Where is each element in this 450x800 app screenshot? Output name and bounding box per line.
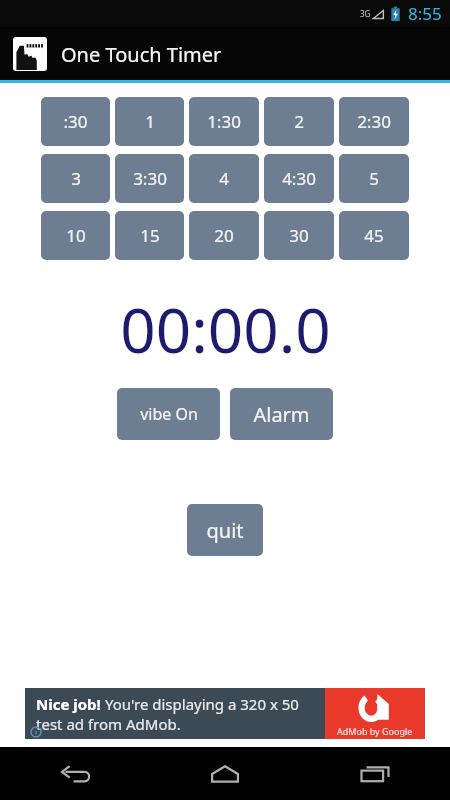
staticText: 4:30 [282,167,316,190]
staticText: You're displaying a 320 x 50 [105,694,299,714]
staticText: 3G [360,8,371,19]
staticText: One Touch Timer [61,41,222,68]
staticText: 3:30 [133,167,167,190]
button[interactable]: AdMob test advertisement [25,688,425,739]
button[interactable]: 2:30 [339,97,409,146]
button[interactable]: 2 [264,97,334,146]
staticText: AdMob by Google [337,725,413,737]
staticText: Nice job! [36,694,105,714]
staticText: 3 [71,167,81,190]
staticText: 15 [140,224,160,247]
button[interactable]: Recent apps [300,747,450,800]
button[interactable]: Home [150,747,300,800]
staticText: 1 [145,110,155,133]
staticText: vibe On [140,403,198,425]
staticText: 1:30 [207,110,241,133]
staticText: 30 [289,224,309,247]
staticText: test ad from AdMob. [36,714,181,734]
button[interactable]: :30 [41,97,110,146]
button[interactable]: 5 [339,154,409,203]
staticText: 2:30 [357,110,391,133]
staticText: 00:00.0 [120,287,331,371]
staticText: Alarm [253,401,310,428]
button[interactable]: 15 [115,211,184,260]
button[interactable]: Alarm [230,388,333,440]
staticText: :30 [63,110,88,133]
button[interactable]: quit [187,504,263,556]
button[interactable]: 1 [115,97,184,146]
staticText: 2 [294,110,304,133]
button[interactable]: 3 [41,154,110,203]
staticText: quit [206,517,244,544]
button[interactable]: 4 [189,154,259,203]
staticText: 5 [369,167,379,190]
staticText: 20 [214,224,234,247]
staticText: 4 [219,167,229,190]
button[interactable]: 30 [264,211,334,260]
button[interactable]: Back [0,747,150,800]
button[interactable]: 45 [339,211,409,260]
button[interactable]: vibe On [117,388,220,440]
button[interactable]: 4:30 [264,154,334,203]
button[interactable]: 20 [189,211,259,260]
button[interactable]: 3:30 [115,154,184,203]
staticText: 8:55 [408,2,442,25]
button[interactable]: 1:30 [189,97,259,146]
button[interactable]: 10 [41,211,110,260]
button[interactable]: One Touch Timer app icon [13,37,47,71]
staticText: 45 [364,224,384,247]
staticText: 10 [66,224,86,247]
